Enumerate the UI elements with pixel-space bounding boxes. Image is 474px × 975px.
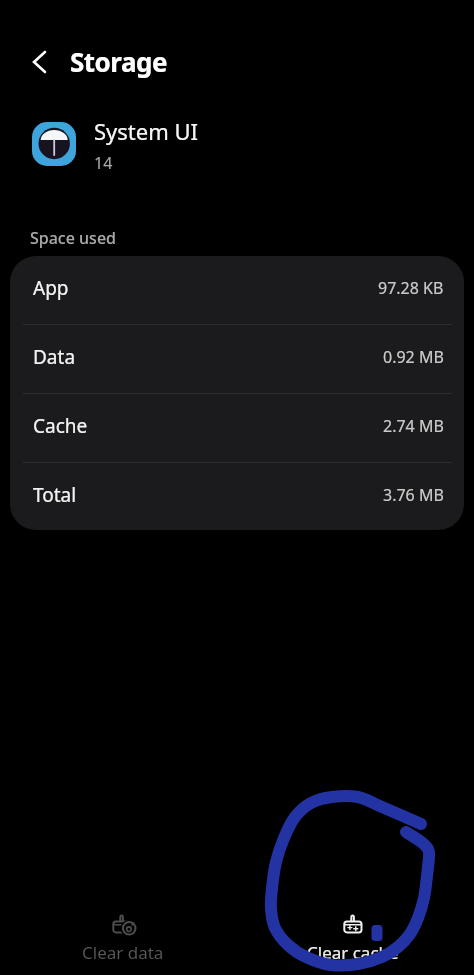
button[interactable]: Clear cache (237, 900, 474, 975)
staticText: 0.92 MB (383, 346, 444, 368)
staticText: Data (33, 344, 76, 370)
staticText: 3.76 MB (383, 484, 444, 506)
staticText: Space used (30, 227, 116, 249)
button[interactable]: App (10, 256, 464, 324)
staticText: Storage (70, 44, 167, 79)
staticText: Cache (33, 413, 88, 439)
staticText: Clear cache (307, 941, 399, 964)
staticText: App (33, 275, 69, 301)
staticText: 2.74 MB (383, 415, 444, 437)
staticText: 14 (94, 152, 113, 174)
button[interactable]: Clear data (0, 900, 237, 975)
staticText: System UI (94, 116, 199, 146)
staticText: Clear data (82, 941, 164, 964)
button[interactable]: Total (10, 463, 464, 530)
staticText: 97.28 KB (378, 277, 444, 299)
button[interactable]: Cache (10, 394, 464, 462)
button[interactable] (24, 46, 52, 74)
staticText: Total (33, 482, 77, 508)
button[interactable]: Data (10, 325, 464, 393)
